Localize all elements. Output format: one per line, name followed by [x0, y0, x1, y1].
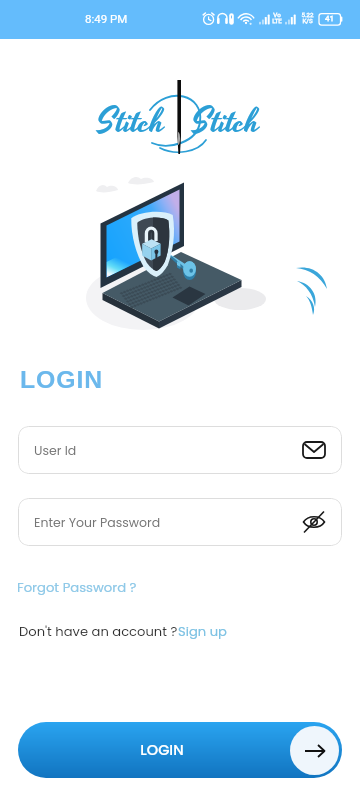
staticText: LOGIN [140, 740, 184, 760]
staticText: 5.22 K/S [301, 11, 314, 25]
button[interactable]: Sign up [178, 622, 227, 640]
button[interactable]: Forgot Password ? [17, 576, 137, 598]
staticText: Vo LTE [272, 11, 282, 25]
staticText: Sign up [178, 622, 227, 640]
button[interactable]: LOGIN [18, 722, 342, 778]
staticText: Stitch [97, 98, 165, 148]
staticText: Stitch [192, 98, 260, 148]
staticText: Don't have an account ? [19, 622, 178, 640]
staticText: 41 [325, 14, 334, 23]
staticText: Enter Your Password [34, 514, 161, 531]
staticText: Forgot Password ? [17, 578, 137, 596]
button[interactable]: User Id [18, 426, 342, 474]
staticText: 8:49 PM [85, 12, 128, 25]
staticText: User Id [34, 442, 77, 459]
button[interactable]: Enter Your Password [18, 498, 342, 546]
other: Submit [290, 726, 339, 775]
staticText: LOGIN [20, 366, 104, 394]
